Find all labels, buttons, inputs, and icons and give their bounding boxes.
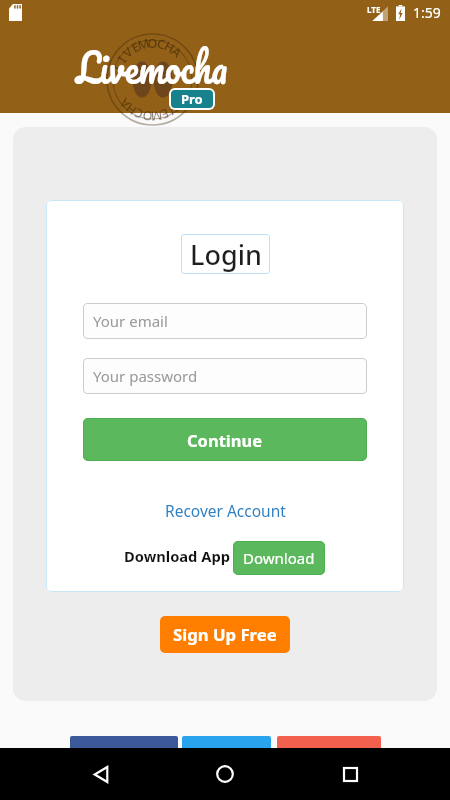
staticText: LTE <box>367 4 381 15</box>
button[interactable]: Pro <box>171 90 213 108</box>
staticText: Livemocha <box>76 31 228 103</box>
button[interactable]: Download App <box>124 543 232 569</box>
staticText: Recover Account <box>165 500 286 521</box>
button[interactable]: Continue <box>83 418 367 461</box>
button[interactable]: Recover Account <box>160 498 290 522</box>
staticText: Download <box>243 548 315 568</box>
staticText: Sign Up Free <box>173 623 277 646</box>
button[interactable]: Sign in with Facebook <box>70 736 178 766</box>
staticText: Continue <box>187 429 263 451</box>
staticText: Download App <box>124 546 230 566</box>
button[interactable]: Login <box>181 234 270 274</box>
button[interactable]: Your email <box>83 303 367 339</box>
staticText: 1:59 <box>413 3 441 22</box>
button[interactable]: Sign in with Twitter <box>182 736 271 766</box>
button[interactable]: Back <box>77 750 125 798</box>
staticText: Login <box>190 236 262 273</box>
staticText: Pro <box>181 90 203 108</box>
button[interactable]: Recent apps <box>326 750 374 798</box>
staticText: Your password <box>93 366 198 386</box>
button[interactable]: Your password <box>83 358 367 394</box>
button[interactable]: Sign in with Google <box>277 736 381 766</box>
staticText: Your email <box>93 311 168 331</box>
button[interactable]: Download <box>233 541 325 575</box>
button[interactable]: Home <box>201 750 249 798</box>
button[interactable]: Sign Up Free <box>160 616 290 653</box>
